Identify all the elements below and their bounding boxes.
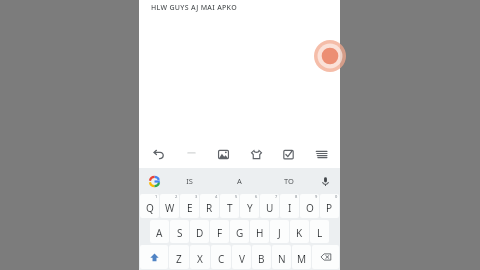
button[interactable]: 8 <box>280 194 299 218</box>
staticText: HLW GUYS AJ MAI APKO <box>151 3 237 13</box>
button[interactable]: Google <box>143 170 165 192</box>
button[interactable]: TO <box>264 168 314 193</box>
button[interactable]: 2 <box>160 194 179 218</box>
button[interactable]: N <box>272 245 291 269</box>
button[interactable]: 6 <box>240 194 259 218</box>
staticText: TO <box>284 176 294 186</box>
staticText: 1 <box>155 194 158 199</box>
button[interactable]: 7 <box>260 194 279 218</box>
staticText: 4 <box>215 194 218 199</box>
button[interactable]: C <box>211 245 231 269</box>
staticText: Q <box>146 201 154 215</box>
button[interactable]: IS <box>165 168 214 193</box>
button[interactable]: H <box>250 220 269 243</box>
staticText: Z <box>176 252 182 266</box>
staticText: P <box>326 201 333 215</box>
button[interactable]: 5 <box>220 194 239 218</box>
staticText: A <box>156 226 163 240</box>
staticText: X <box>197 252 203 266</box>
button[interactable]: 0 <box>320 194 339 218</box>
button[interactable]: X <box>190 245 210 269</box>
button[interactable]: A <box>150 220 169 243</box>
staticText: E <box>187 201 193 215</box>
button[interactable]: More options <box>308 141 334 167</box>
staticText: N <box>278 252 286 266</box>
button[interactable]: 3 <box>180 194 199 218</box>
staticText: L <box>317 226 323 240</box>
button[interactable]: Sticker <box>243 141 269 167</box>
button[interactable]: D <box>190 220 209 243</box>
staticText: 9 <box>315 194 318 199</box>
staticText: J <box>278 226 281 240</box>
staticText: D <box>196 226 204 240</box>
button[interactable]: F <box>210 220 229 243</box>
staticText: 7 <box>275 194 278 199</box>
staticText: T <box>227 201 233 215</box>
button[interactable]: L <box>310 220 329 243</box>
staticText: U <box>266 201 274 215</box>
button[interactable]: K <box>290 220 309 243</box>
button[interactable]: Z <box>169 245 189 269</box>
button[interactable]: 4 <box>200 194 219 218</box>
staticText: Y <box>247 201 253 215</box>
staticText: 2 <box>175 194 178 199</box>
button[interactable]: Undo <box>145 141 171 167</box>
staticText: R <box>206 201 213 215</box>
staticText: F <box>217 226 223 240</box>
staticText: G <box>236 226 244 240</box>
button[interactable]: M <box>292 245 311 269</box>
button[interactable]: B <box>252 245 271 269</box>
button[interactable]: Insert image <box>210 141 236 167</box>
staticText: 3 <box>195 194 198 199</box>
staticText: W <box>165 201 175 215</box>
staticText: S <box>177 226 183 240</box>
staticText: V <box>239 252 245 266</box>
staticText: A <box>237 176 242 186</box>
button[interactable]: Voice input <box>314 170 336 192</box>
button[interactable]: Backspace <box>312 245 339 269</box>
staticText: M <box>297 252 307 266</box>
staticText: B <box>258 252 265 266</box>
staticText: IS <box>186 176 193 186</box>
staticText: I <box>288 201 292 215</box>
button[interactable]: V <box>232 245 251 269</box>
button[interactable]: S <box>170 220 189 243</box>
button[interactable]: A <box>214 168 264 193</box>
button[interactable]: Checklist <box>275 141 301 167</box>
staticText: 6 <box>255 194 258 199</box>
button[interactable]: 1 <box>140 194 159 218</box>
staticText: H <box>256 226 264 240</box>
staticText: K <box>296 226 303 240</box>
button[interactable]: G <box>230 220 249 243</box>
button[interactable]: 9 <box>300 194 319 218</box>
staticText: 8 <box>295 194 298 199</box>
button[interactable]: J <box>270 220 289 243</box>
staticText: 5 <box>235 194 238 199</box>
button[interactable]: Redo <box>178 141 204 167</box>
staticText: C <box>218 252 225 266</box>
staticText: 0 <box>335 194 338 199</box>
button[interactable]: Shift <box>140 245 168 269</box>
staticText: O <box>306 201 314 215</box>
